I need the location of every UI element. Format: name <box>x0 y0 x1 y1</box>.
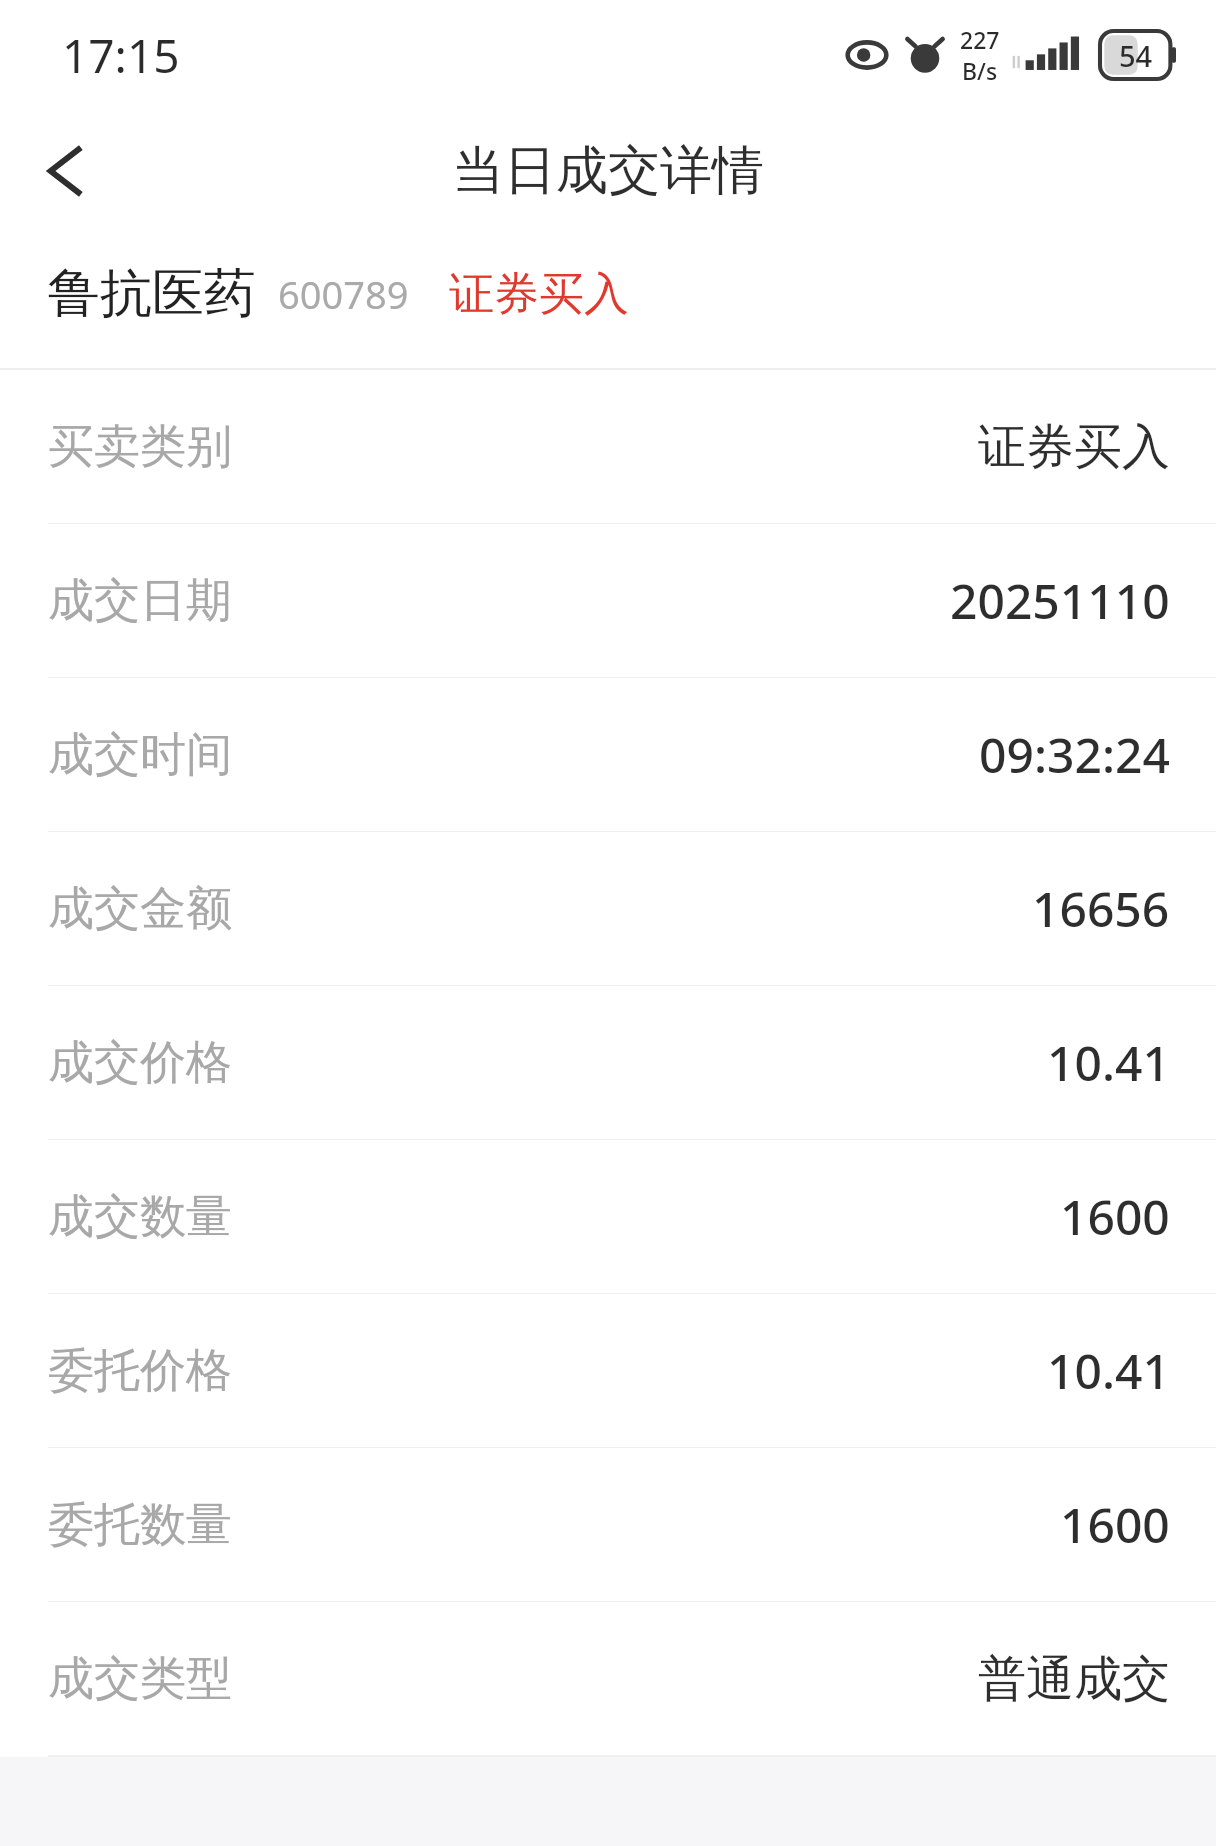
staticText: 成交日期 <box>48 572 232 630</box>
button[interactable]: 成交类型 <box>0 1602 1216 1755</box>
button[interactable]: 成交价格 <box>0 986 1216 1139</box>
staticText: 227 <box>960 24 1000 55</box>
staticText: 普通成交 <box>978 1649 1170 1709</box>
button[interactable]: 成交数量 <box>0 1140 1216 1293</box>
staticText: 10.41 <box>1047 1030 1170 1095</box>
staticText: 证券买入 <box>449 266 629 323</box>
staticText: 09:32:24 <box>979 722 1170 787</box>
button[interactable]: 买卖类别 <box>0 370 1216 523</box>
staticText: 成交时间 <box>48 726 232 784</box>
staticText: 鲁抗医药 <box>48 261 256 327</box>
staticText: 成交金额 <box>48 880 232 938</box>
staticText: 成交类型 <box>48 1650 232 1708</box>
button[interactable]: 委托数量 <box>0 1448 1216 1601</box>
staticText: 委托数量 <box>48 1496 232 1554</box>
staticText: 成交数量 <box>48 1188 232 1246</box>
staticText: 当日成交详情 <box>452 138 764 204</box>
staticText: 委托价格 <box>48 1342 232 1400</box>
button[interactable]: 委托价格 <box>0 1294 1216 1447</box>
staticText: 买卖类别 <box>48 418 232 476</box>
staticText: 1600 <box>1060 1492 1170 1557</box>
button[interactable]: 成交金额 <box>0 832 1216 985</box>
staticText: 1600 <box>1060 1184 1170 1249</box>
button[interactable]: 成交日期 <box>0 524 1216 677</box>
staticText: 17:15 <box>62 24 180 87</box>
button[interactable]: 成交时间 <box>0 678 1216 831</box>
button[interactable]: 返回 <box>14 119 118 223</box>
staticText: 20251110 <box>950 568 1170 633</box>
staticText: 54 <box>1119 36 1153 75</box>
staticText: 600789 <box>278 268 409 320</box>
staticText: 成交价格 <box>48 1034 232 1092</box>
staticText: 10.41 <box>1047 1338 1170 1403</box>
staticText: 证券买入 <box>978 417 1170 477</box>
staticText: B/s <box>962 55 998 86</box>
staticText: 16656 <box>1032 876 1170 941</box>
